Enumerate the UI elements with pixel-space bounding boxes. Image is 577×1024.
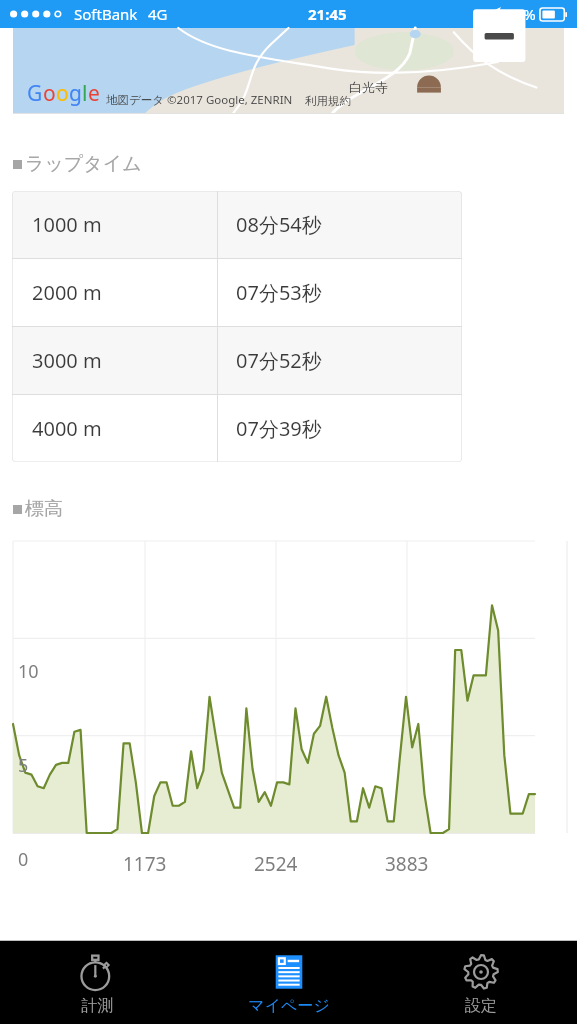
staticText: SoftBank bbox=[74, 4, 138, 24]
staticText: ラップタイム bbox=[25, 152, 142, 176]
button[interactable]: 2000 m bbox=[12, 259, 462, 326]
staticText: 07分53秒 bbox=[236, 279, 322, 306]
staticText: 4000 m bbox=[32, 415, 102, 442]
staticText: 地図データ ©2017 Google, ZENRIN bbox=[106, 92, 293, 108]
staticText: 利用規約 bbox=[305, 94, 351, 108]
staticText: 64% bbox=[506, 4, 536, 24]
button[interactable]: 計測 bbox=[0, 941, 193, 1024]
staticText: 07分52秒 bbox=[236, 347, 322, 374]
staticText: 計測 bbox=[81, 996, 113, 1016]
staticText: 21:45 bbox=[308, 4, 347, 24]
button[interactable]: 1000 m bbox=[12, 191, 462, 258]
staticText: 設定 bbox=[465, 996, 497, 1016]
staticText: g bbox=[69, 79, 82, 108]
button[interactable]: 4000 m bbox=[12, 395, 462, 462]
staticText: 5 bbox=[18, 753, 29, 778]
staticText: 07分39秒 bbox=[236, 415, 322, 442]
staticText: 3883 bbox=[385, 851, 429, 877]
staticText: 2524 bbox=[254, 851, 298, 877]
staticText: e bbox=[88, 79, 100, 108]
staticText: o bbox=[56, 79, 69, 108]
staticText: G bbox=[27, 79, 43, 108]
staticText: 4G bbox=[148, 4, 168, 24]
staticText: 10 bbox=[18, 659, 39, 684]
staticText: 1173 bbox=[123, 851, 167, 877]
staticText: 1000 m bbox=[32, 211, 102, 238]
staticText: 0 bbox=[18, 847, 29, 872]
staticText: 3000 m bbox=[32, 347, 102, 374]
button[interactable]: マイページ bbox=[193, 941, 385, 1024]
staticText: 白光寺 bbox=[349, 79, 388, 95]
staticText: マイページ bbox=[248, 996, 330, 1016]
button[interactable]: 設定 bbox=[385, 941, 577, 1024]
staticText: o bbox=[43, 79, 56, 108]
staticText: 2000 m bbox=[32, 279, 102, 306]
button[interactable]: G bbox=[13, 28, 564, 113]
button[interactable]: 3000 m bbox=[12, 327, 462, 394]
staticText: 標高 bbox=[25, 497, 63, 521]
staticText: l bbox=[82, 79, 88, 108]
staticText: 08分54秒 bbox=[236, 211, 322, 238]
